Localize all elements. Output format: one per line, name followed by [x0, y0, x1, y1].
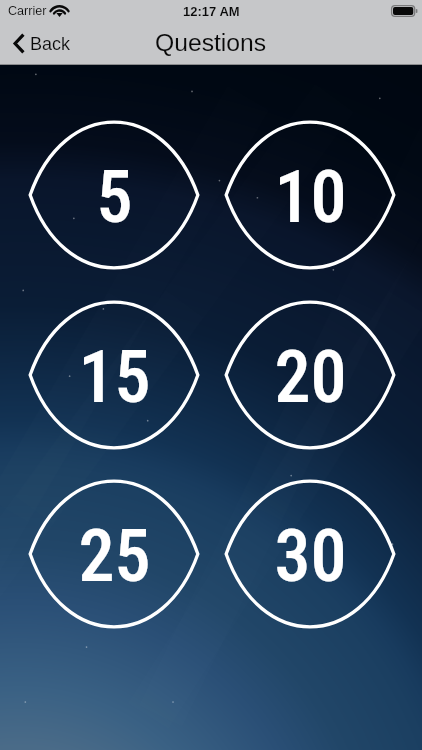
other: Wi-Fi	[52, 6, 67, 17]
button[interactable]: 15	[28, 300, 200, 450]
staticText: 30	[274, 514, 347, 599]
staticText: 25	[78, 514, 151, 599]
staticText: 5	[96, 155, 133, 240]
staticText: 20	[274, 335, 347, 420]
button[interactable]: 30	[224, 479, 396, 629]
button[interactable]: Back	[0, 27, 83, 60]
other: Battery full	[391, 5, 418, 17]
staticText: Questions	[155, 29, 267, 57]
staticText: Carrier	[8, 4, 47, 18]
staticText: 12:17 AM	[183, 4, 240, 19]
button[interactable]: 5	[28, 120, 200, 270]
button[interactable]: 20	[224, 300, 396, 450]
staticText: 10	[274, 155, 347, 240]
button[interactable]: 25	[28, 479, 200, 629]
staticText: 15	[78, 335, 151, 420]
button[interactable]: 10	[224, 120, 396, 270]
staticText: Back	[30, 34, 71, 54]
